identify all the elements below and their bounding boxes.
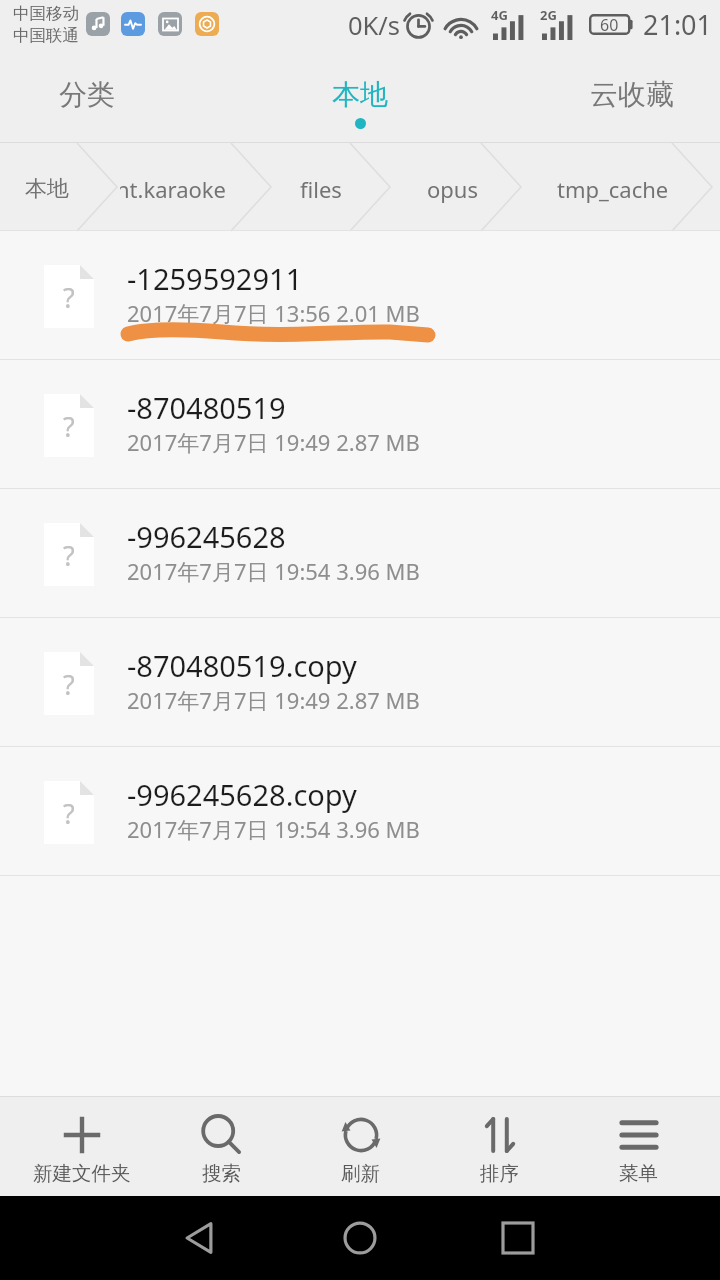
staticText: 60	[600, 14, 619, 35]
staticText: 菜单	[619, 1161, 658, 1186]
button[interactable]: 本地	[260, 57, 460, 143]
button[interactable]: 新建文件夹	[12, 1097, 152, 1196]
button[interactable]: ?	[0, 618, 720, 747]
staticText: -996245628	[127, 517, 286, 556]
staticText: 云收藏	[590, 77, 674, 112]
staticText: 2G	[540, 6, 557, 24]
button[interactable]: ?	[0, 747, 720, 876]
button[interactable]: 本地	[25, 143, 720, 231]
staticText: 本地	[332, 77, 388, 112]
staticText: 中国移动	[13, 3, 79, 24]
staticText: nt.karaoke	[120, 174, 226, 204]
staticText: 本地	[25, 175, 69, 203]
staticText: files	[300, 174, 342, 204]
button[interactable]: 分类	[0, 57, 187, 143]
button[interactable]: tmp_cache	[557, 143, 720, 231]
staticText: -996245628.copy	[127, 775, 357, 814]
button[interactable]: 刷新	[291, 1097, 430, 1196]
button[interactable]: ?	[0, 231, 720, 360]
staticText: opus	[427, 174, 478, 204]
staticText: 2017年7月7日 19:49 2.87 MB	[127, 427, 420, 457]
staticText: ?	[63, 279, 75, 316]
button[interactable]: ?	[0, 489, 720, 618]
button[interactable]: 排序	[430, 1097, 569, 1196]
button[interactable]: opus	[427, 143, 720, 231]
staticText: 刷新	[341, 1161, 380, 1186]
staticText: 新建文件夹	[33, 1161, 131, 1186]
button[interactable]: Home	[330, 1196, 390, 1280]
staticText: 21:01	[643, 6, 713, 43]
staticText: 排序	[480, 1161, 519, 1186]
staticText: -870480519.copy	[127, 646, 357, 685]
button[interactable]: Recents	[488, 1196, 548, 1280]
staticText: 2017年7月7日 13:56 2.01 MB	[127, 298, 420, 328]
staticText: 2017年7月7日 19:54 3.96 MB	[127, 556, 420, 586]
button[interactable]: Back	[170, 1196, 230, 1280]
staticText: ?	[63, 795, 75, 832]
staticText: -870480519	[127, 388, 286, 427]
button[interactable]: 菜单	[569, 1097, 708, 1196]
staticText: 分类	[59, 77, 115, 112]
staticText: 搜索	[202, 1161, 241, 1186]
staticText: -1259592911	[127, 259, 303, 298]
staticText: ?	[63, 408, 75, 445]
staticText: 4G	[491, 6, 508, 24]
button[interactable]: 搜索	[152, 1097, 291, 1196]
staticText: tmp_cache	[557, 174, 669, 204]
button[interactable]: files	[300, 143, 720, 231]
staticText: ?	[63, 537, 75, 574]
staticText: 中国联通	[13, 25, 79, 46]
button[interactable]: ?	[0, 360, 720, 489]
button[interactable]: 云收藏	[532, 57, 720, 143]
staticText: 0K/s	[348, 8, 401, 43]
staticText: 2017年7月7日 19:54 3.96 MB	[127, 814, 420, 844]
staticText: 2017年7月7日 19:49 2.87 MB	[127, 685, 420, 715]
button[interactable]: nt.karaoke	[120, 143, 230, 231]
staticText: ?	[63, 666, 75, 703]
